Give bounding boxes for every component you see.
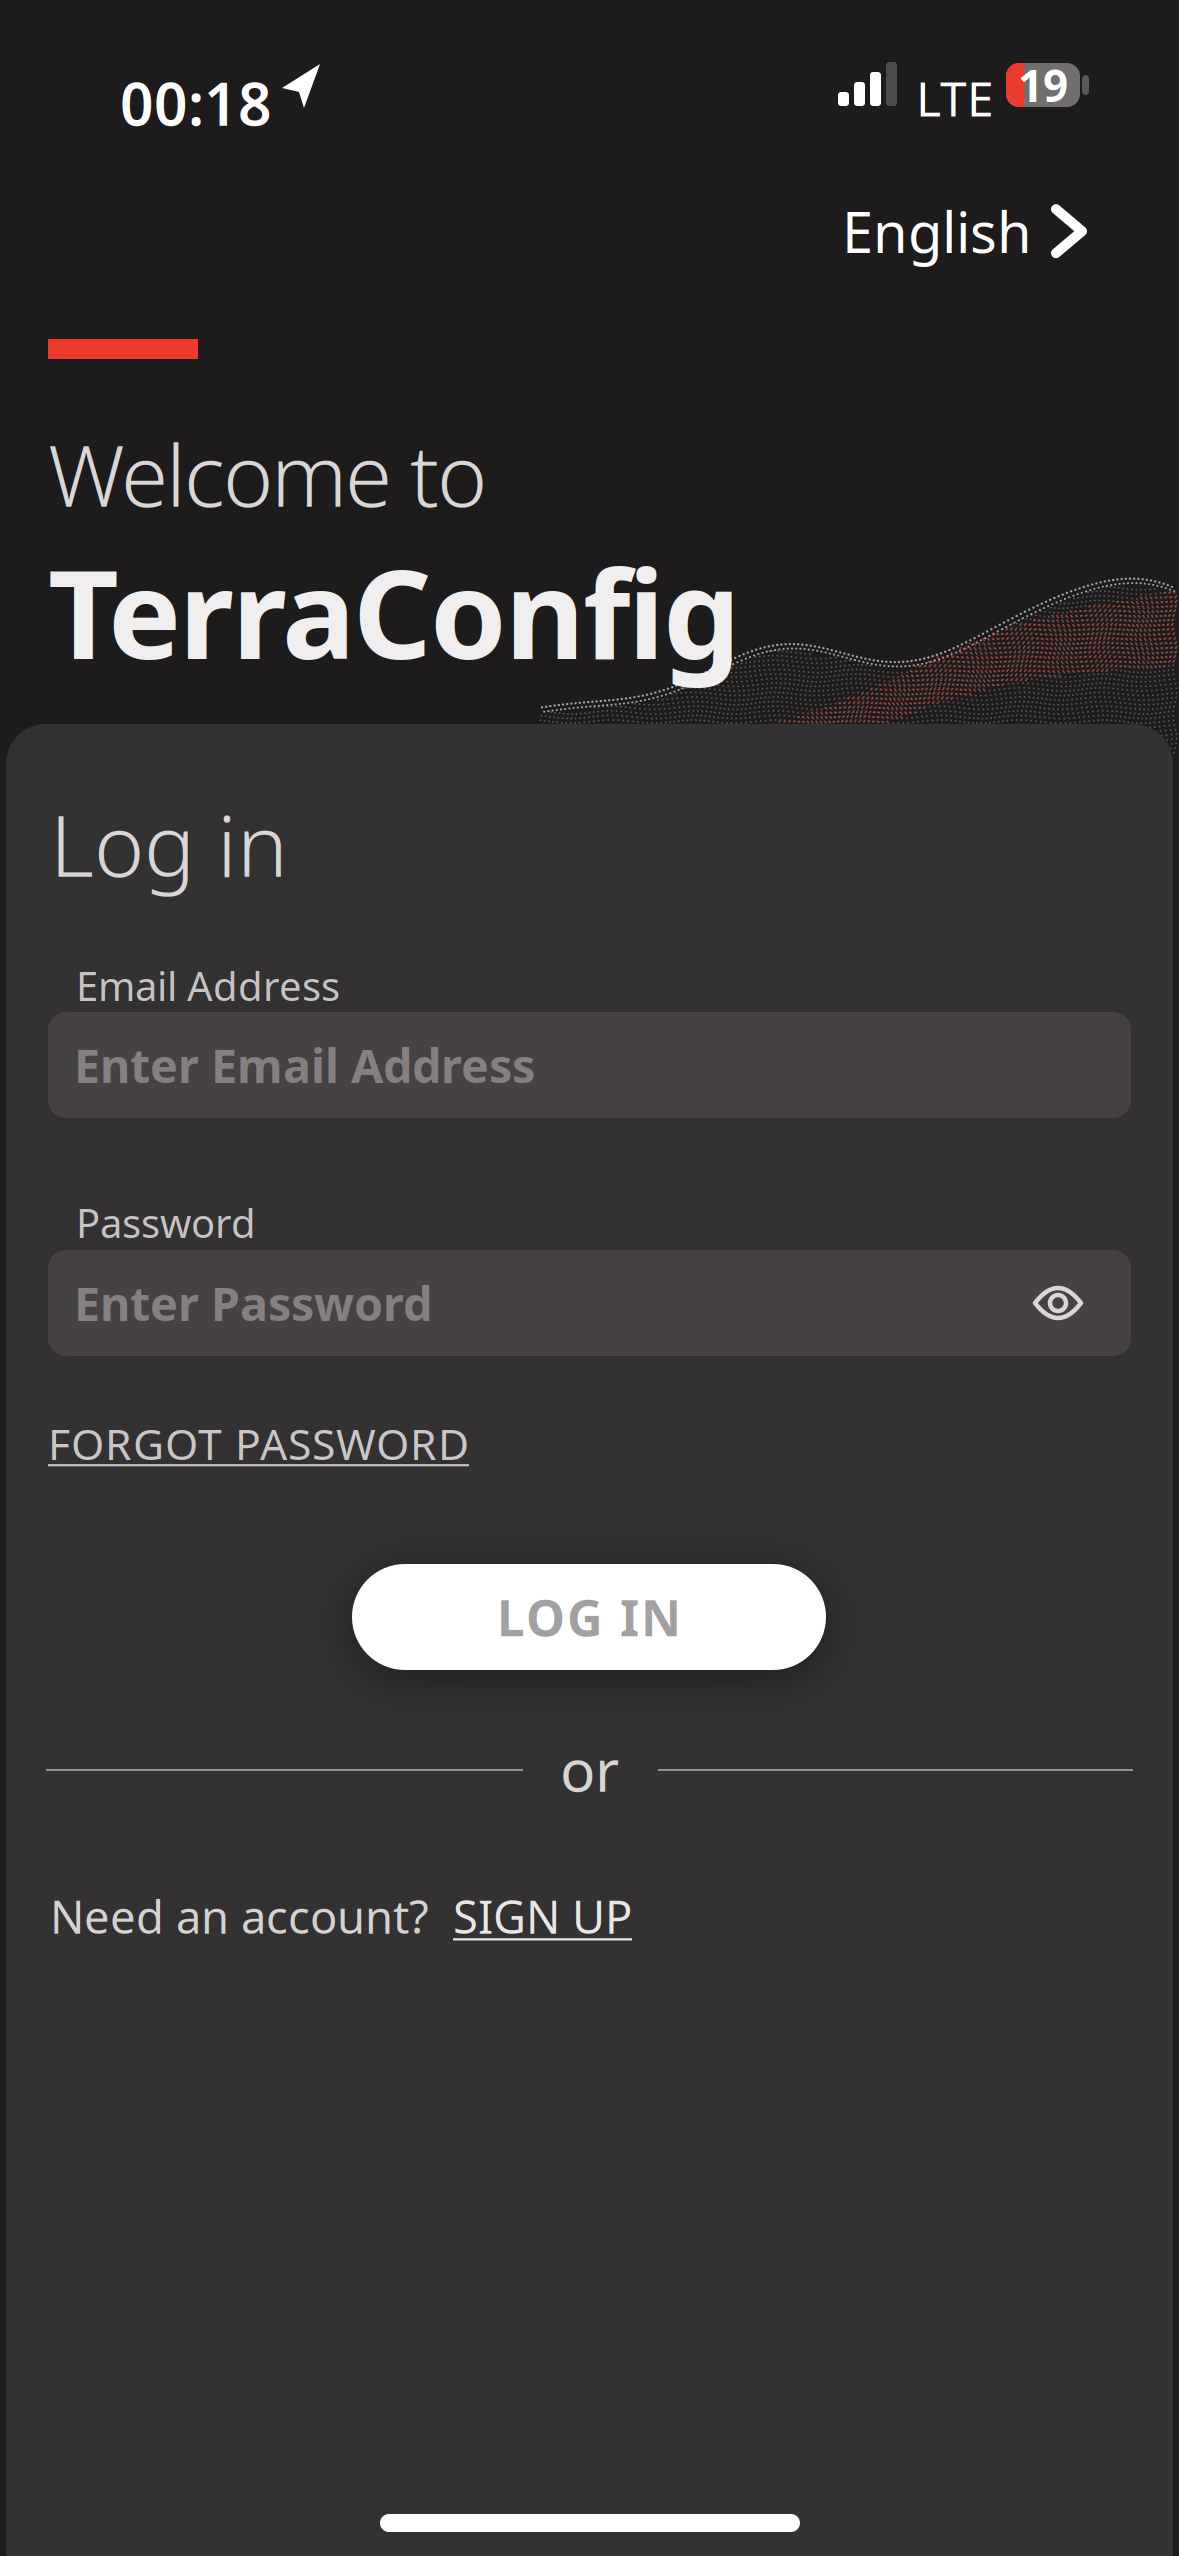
button[interactable]: FORGOT PASSWORD: [48, 1415, 469, 1472]
staticText: FORGOT PASSWORD: [48, 1415, 469, 1472]
staticText: Email Address: [76, 959, 340, 1012]
staticText: Enter Email Address: [74, 1034, 535, 1096]
button[interactable]: LOG IN: [352, 1564, 826, 1670]
staticText: LOG IN: [497, 1584, 681, 1650]
staticText: SIGN UP: [453, 1886, 632, 1946]
staticText: or: [560, 1730, 619, 1808]
staticText: Password: [76, 1196, 256, 1249]
staticText: Log in: [50, 787, 288, 900]
staticText: 00:18: [120, 64, 272, 142]
button[interactable]: SIGN UP: [453, 1886, 632, 1946]
button[interactable]: English: [0, 194, 1179, 268]
button[interactable]: Enter Password: [48, 1250, 1131, 1356]
staticText: LTE: [916, 66, 994, 130]
staticText: English: [842, 194, 1032, 268]
staticText: Welcome to: [48, 417, 487, 530]
staticText: TerraConfig: [48, 530, 741, 693]
staticText: Enter Password: [74, 1272, 432, 1334]
staticText: 19: [1018, 56, 1068, 114]
button[interactable]: Enter Email Address: [48, 1012, 1131, 1118]
staticText: Need an account?: [50, 1886, 429, 1946]
